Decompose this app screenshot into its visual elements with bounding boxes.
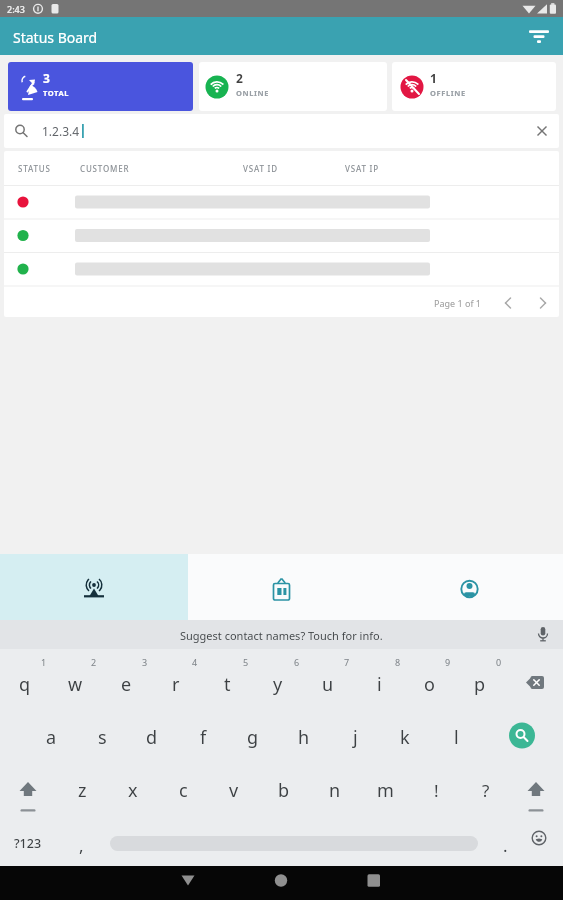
button[interactable]: . (483, 823, 527, 867)
button[interactable]: b (262, 768, 306, 812)
button[interactable] (0, 554, 188, 620)
button[interactable]: l (434, 715, 478, 759)
button[interactable]: 1.2.3.4 (4, 114, 559, 148)
staticText: 9 (445, 656, 451, 668)
button[interactable]: m (363, 768, 407, 812)
button[interactable]: n (313, 768, 357, 812)
staticText: 3 (43, 70, 50, 86)
staticText: 7 (344, 656, 350, 668)
staticText: 8 (395, 656, 401, 668)
staticText: v (229, 778, 239, 803)
staticText: VSAT ID (243, 163, 278, 174)
button[interactable]: j (333, 715, 377, 759)
staticText: 4 (192, 656, 198, 668)
button[interactable] (334, 866, 414, 900)
button[interactable]: h (282, 715, 326, 759)
staticText: 5 (243, 656, 249, 668)
staticText: u (322, 672, 334, 697)
staticText: d (146, 725, 158, 750)
staticText: c (179, 778, 188, 803)
staticText: y (273, 672, 283, 697)
button[interactable]: q (3, 662, 47, 706)
button[interactable]: s (80, 715, 124, 759)
staticText: m (377, 778, 394, 803)
button[interactable]: k (383, 715, 427, 759)
button[interactable]: a (29, 715, 73, 759)
staticText: h (298, 725, 310, 750)
button[interactable]: , (59, 823, 103, 867)
button[interactable] (518, 825, 554, 861)
button[interactable]: ? (464, 768, 508, 812)
button[interactable]: 3 (8, 62, 193, 111)
button[interactable]: ! (414, 768, 458, 812)
button[interactable] (519, 17, 559, 55)
staticText: o (424, 672, 435, 697)
staticText: ! (434, 779, 439, 802)
staticText: k (400, 725, 410, 750)
staticText: a (46, 725, 57, 750)
button[interactable]: 1 (392, 62, 556, 111)
button[interactable]: u (306, 662, 350, 706)
staticText: 2 (236, 70, 243, 86)
button[interactable]: i (357, 662, 401, 706)
button[interactable]: o (407, 662, 451, 706)
staticText: Page 1 of 1 (434, 297, 481, 309)
button[interactable] (531, 291, 557, 315)
button[interactable] (503, 719, 539, 755)
staticText: r (172, 672, 180, 697)
staticText: STATUS (18, 163, 51, 174)
staticText: w (68, 672, 83, 697)
staticText: i (377, 672, 382, 697)
staticText: n (329, 778, 341, 803)
staticText: 1.2.3.4 (42, 123, 80, 139)
button[interactable]: p (458, 662, 502, 706)
staticText: g (247, 725, 259, 750)
button[interactable]: Suggest contact names? Touch for info. (0, 620, 563, 649)
button[interactable]: r (154, 662, 198, 706)
staticText: Suggest contact names? Touch for info. (180, 628, 383, 643)
button[interactable]: e (104, 662, 148, 706)
button[interactable]: t (205, 662, 249, 706)
staticText: b (278, 778, 290, 803)
staticText: x (128, 778, 138, 803)
button[interactable]: x (111, 768, 155, 812)
staticText: ONLINE (236, 88, 270, 98)
button[interactable]: w (53, 662, 97, 706)
staticText: VSAT IP (345, 163, 379, 174)
button[interactable]: z (60, 768, 104, 812)
staticText: ?123 (14, 835, 42, 852)
staticText: , (79, 834, 84, 857)
button[interactable] (496, 291, 522, 315)
staticText: q (19, 672, 31, 697)
button[interactable]: ?123 (6, 821, 50, 865)
staticText: p (474, 672, 486, 697)
button[interactable]: y (256, 662, 300, 706)
button[interactable] (513, 669, 553, 699)
staticText: 0 (496, 656, 502, 668)
button[interactable]: d (130, 715, 174, 759)
button[interactable]: c (161, 768, 205, 812)
staticText: TOTAL (43, 88, 70, 98)
button[interactable] (241, 866, 321, 900)
button[interactable] (375, 554, 563, 620)
button[interactable]: f (181, 715, 225, 759)
staticText: l (454, 725, 459, 750)
staticText: s (98, 725, 107, 750)
button[interactable] (188, 554, 375, 620)
button[interactable]: v (212, 768, 256, 812)
staticText: z (78, 778, 87, 803)
staticText: 2:43 (7, 3, 25, 15)
staticText: 3 (142, 656, 148, 668)
button[interactable]: g (231, 715, 275, 759)
button[interactable]: 2 (199, 62, 387, 111)
staticText: 1 (430, 70, 437, 86)
button[interactable] (6, 768, 50, 812)
staticText: 2 (91, 656, 97, 668)
staticText: . (503, 834, 508, 857)
button[interactable] (514, 768, 558, 812)
staticText: t (224, 672, 231, 697)
staticText: OFFLINE (430, 88, 466, 98)
staticText: ? (482, 779, 490, 802)
button[interactable] (150, 866, 230, 900)
